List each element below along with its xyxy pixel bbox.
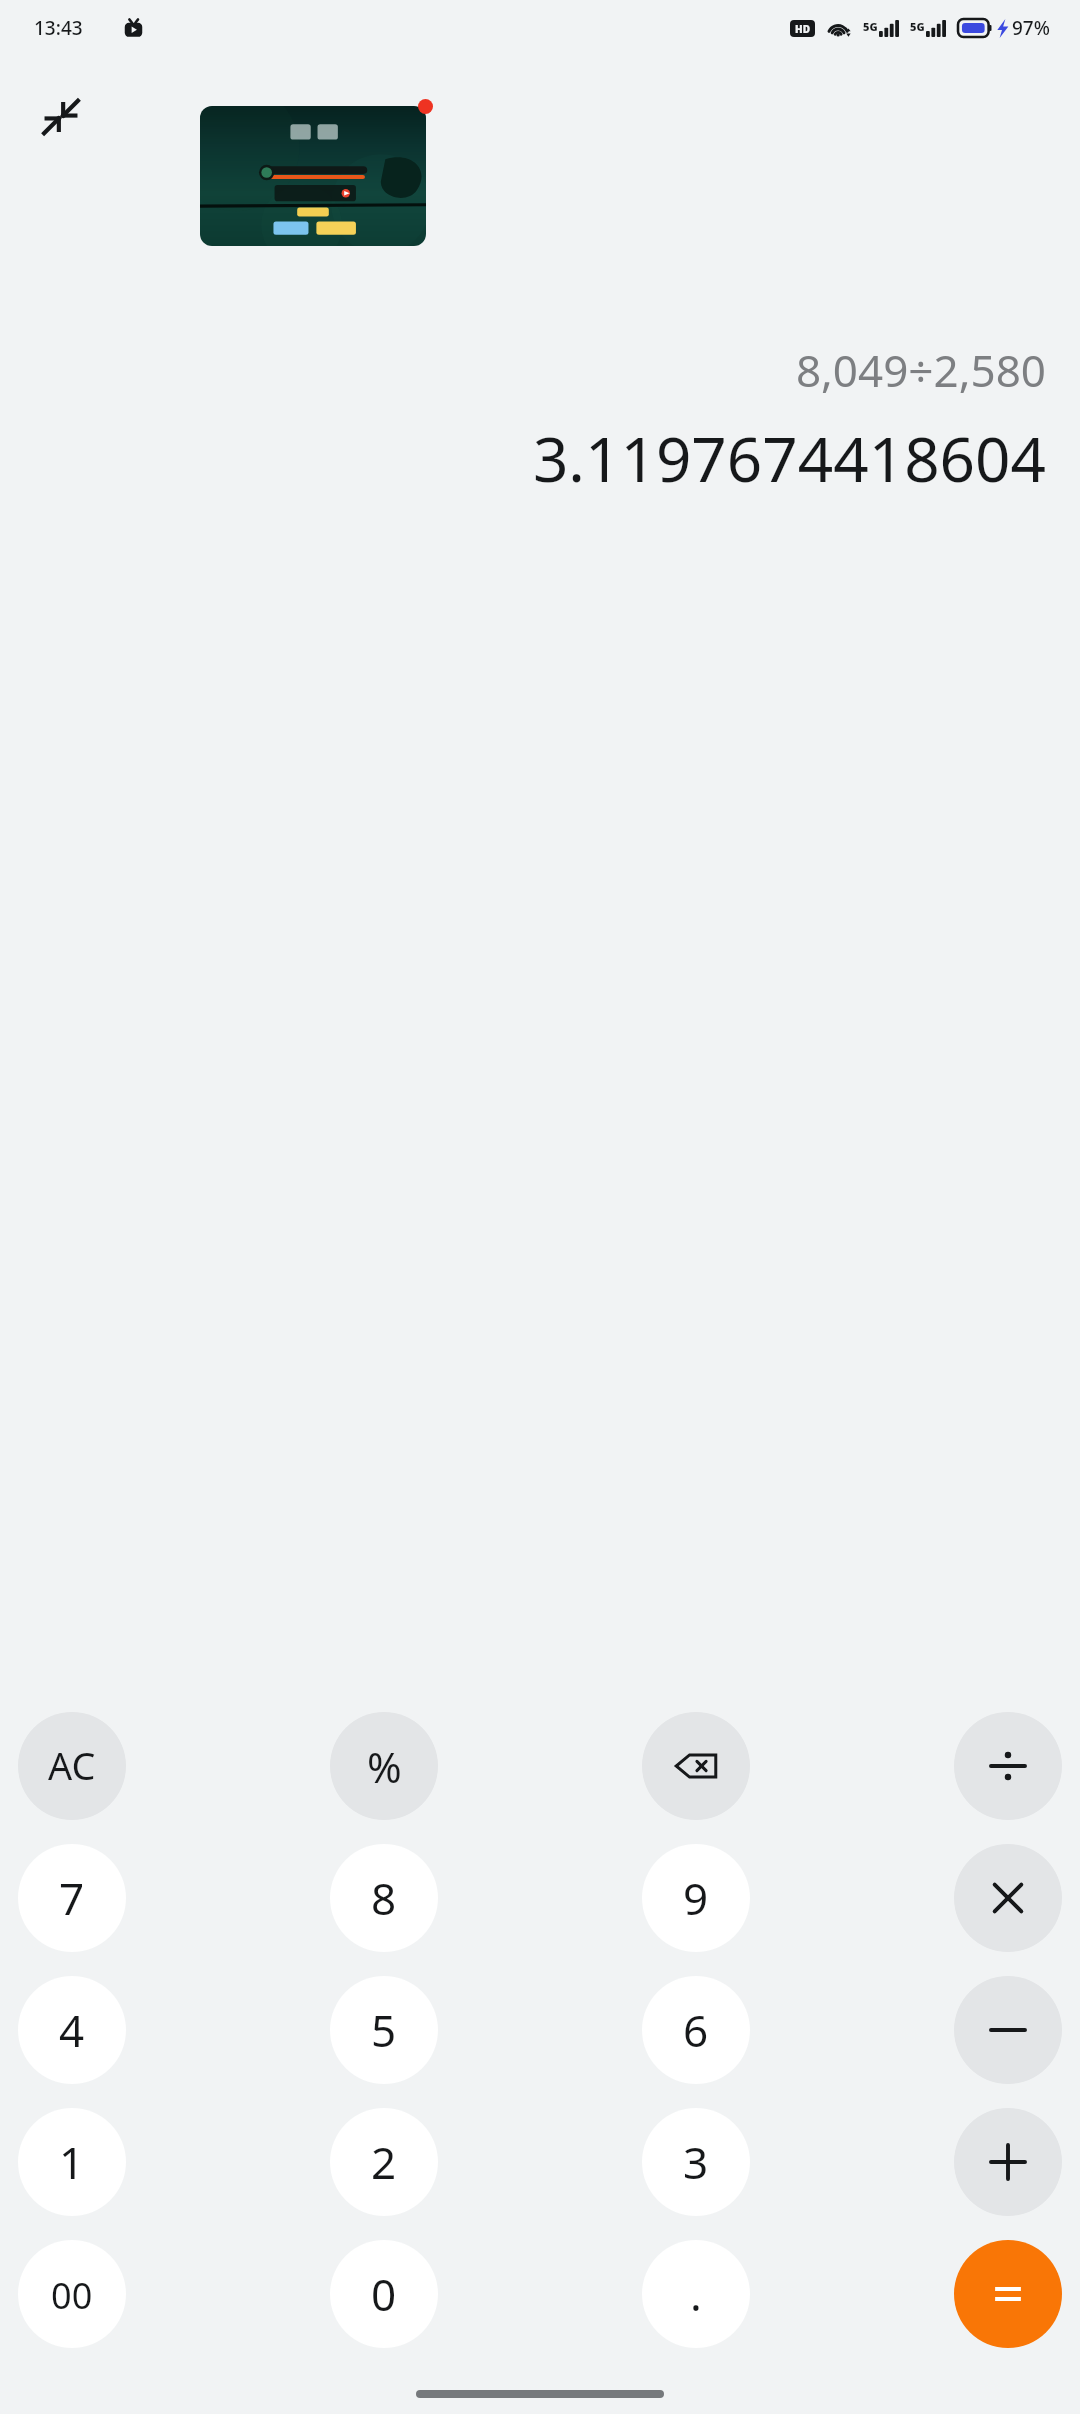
button[interactable]: Equals xyxy=(954,2240,1062,2348)
button[interactable]: 6 xyxy=(642,1976,750,2084)
staticText: 8 xyxy=(371,1868,397,1928)
staticText: 6 xyxy=(683,2000,709,2060)
button[interactable]: % xyxy=(330,1712,438,1820)
staticText: 1 xyxy=(59,2132,85,2192)
button[interactable]: Divide xyxy=(954,1712,1062,1820)
staticText: 4 xyxy=(59,2000,85,2060)
staticText: 97% xyxy=(1012,15,1050,41)
staticText: HD xyxy=(795,22,810,36)
staticText: % xyxy=(367,1738,402,1795)
staticText: 9 xyxy=(683,1868,709,1928)
button[interactable]: AC xyxy=(18,1712,126,1820)
button[interactable]: Collapse xyxy=(30,86,92,148)
button[interactable]: Subtract xyxy=(954,1976,1062,2084)
staticText: 3 xyxy=(683,2132,709,2192)
button[interactable]: 7 xyxy=(18,1844,126,1952)
button[interactable]: . xyxy=(642,2240,750,2348)
button[interactable]: Backspace xyxy=(642,1712,750,1820)
staticText: 5G xyxy=(910,19,925,34)
button[interactable]: Add xyxy=(954,2108,1062,2216)
button[interactable]: 5 xyxy=(330,1976,438,2084)
staticText: . xyxy=(690,2264,702,2324)
button[interactable]: 9 xyxy=(642,1844,750,1952)
button[interactable]: Close floating window xyxy=(418,99,433,114)
button[interactable]: 3 xyxy=(642,2108,750,2216)
button[interactable]: 8 xyxy=(330,1844,438,1952)
staticText: 5G xyxy=(863,19,878,34)
staticText: 00 xyxy=(51,2270,93,2319)
button[interactable]: 4 xyxy=(18,1976,126,2084)
staticText: 3.1197674418604 xyxy=(532,416,1046,500)
staticText: 2 xyxy=(371,2132,397,2192)
staticText: 13:43 xyxy=(34,15,83,41)
button[interactable]: 1 xyxy=(18,2108,126,2216)
button[interactable]: Floating game window xyxy=(200,106,426,246)
staticText: AC xyxy=(48,1740,96,1792)
staticText: 8,049÷2,580 xyxy=(795,340,1046,400)
button[interactable]: Multiply xyxy=(954,1844,1062,1952)
staticText: 0 xyxy=(371,2264,397,2324)
staticText: 7 xyxy=(59,1868,85,1928)
button[interactable]: 00 xyxy=(18,2240,126,2348)
button[interactable]: 2 xyxy=(330,2108,438,2216)
staticText: 5 xyxy=(371,2000,397,2060)
button[interactable]: 0 xyxy=(330,2240,438,2348)
